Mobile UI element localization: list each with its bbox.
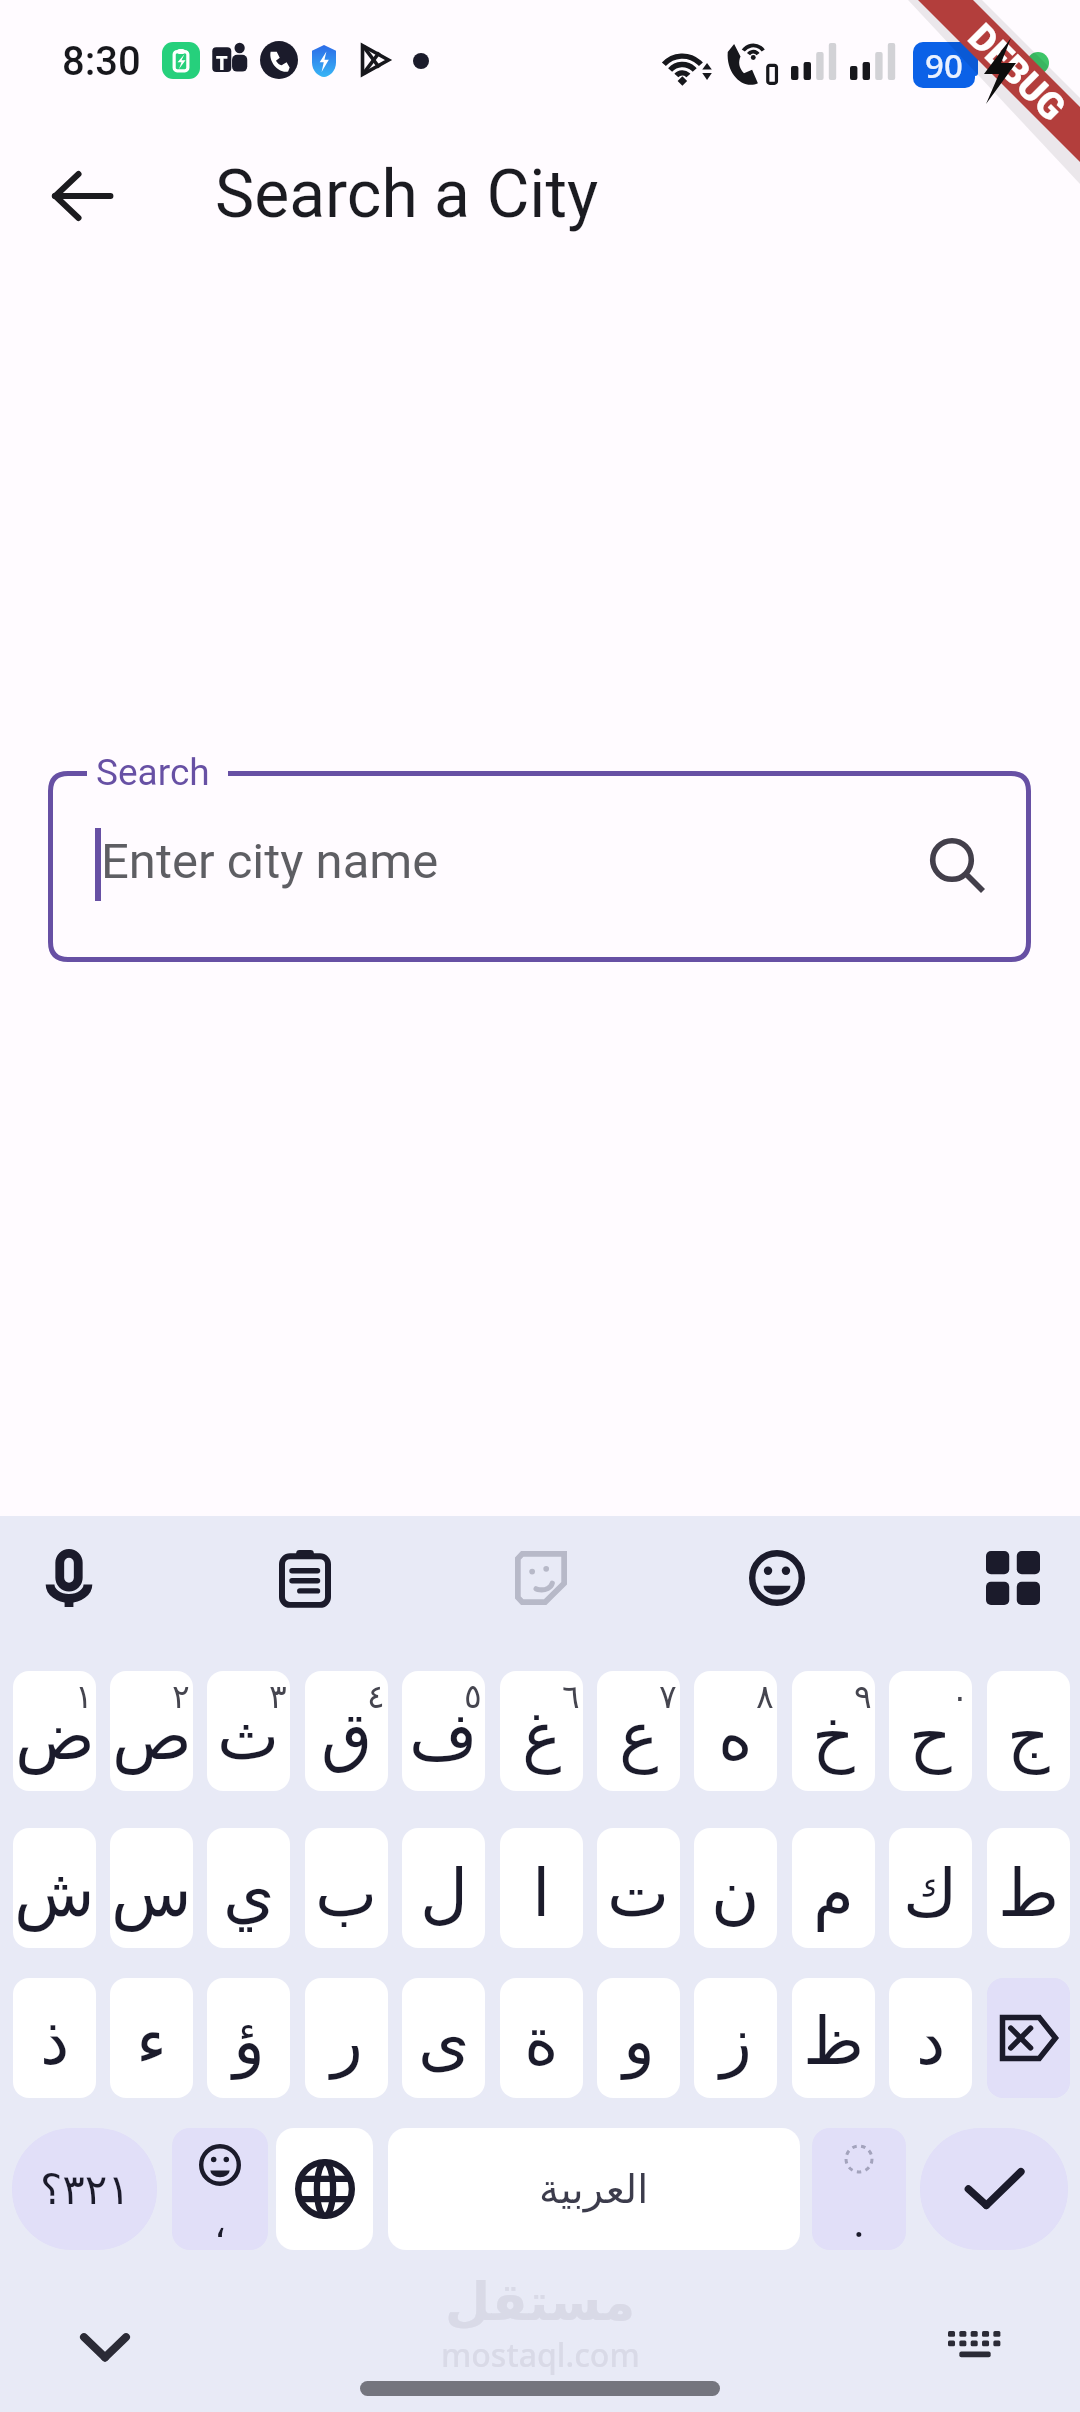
button[interactable]: More options (966, 1531, 1060, 1625)
staticText: ز (720, 2003, 752, 2080)
button[interactable]: Enter (920, 2128, 1068, 2250)
button[interactable]: ؤ (207, 1978, 290, 2098)
button[interactable]: ل (402, 1828, 485, 1948)
button[interactable]: ع (597, 1671, 680, 1791)
staticText: ن (711, 1855, 760, 1932)
button[interactable]: Stickers (494, 1531, 588, 1625)
button[interactable]: ب (305, 1828, 388, 1948)
button[interactable]: ك (889, 1828, 972, 1948)
staticText: ب (315, 1855, 378, 1932)
button[interactable]: Emoji (172, 2128, 268, 2250)
button[interactable]: ف (402, 1671, 485, 1791)
staticText: و (623, 2003, 655, 2080)
staticText: ق (321, 1698, 373, 1775)
button[interactable]: ‎؟‎٣٢١ (12, 2128, 157, 2250)
button[interactable]: ر (305, 1978, 388, 2098)
staticText: ء (136, 2003, 168, 2080)
staticText: ي (223, 1855, 275, 1932)
staticText: غ (522, 1698, 562, 1775)
staticText: 90 (925, 43, 963, 88)
button[interactable]: ء (110, 1978, 193, 2098)
staticText: ٨ (756, 1677, 774, 1715)
staticText: ص (112, 1698, 192, 1775)
button[interactable]: ة (500, 1978, 583, 2098)
staticText: ج (1007, 1698, 1050, 1775)
button[interactable]: ذ (13, 1978, 96, 2098)
staticText: ٥ (464, 1677, 482, 1715)
staticText: ٩ (854, 1677, 872, 1715)
staticText: ك (903, 1855, 958, 1932)
staticText: خ (812, 1698, 855, 1775)
button[interactable]: ن (694, 1828, 777, 1948)
button[interactable]: . (812, 2128, 906, 2250)
staticText: ٠ (951, 1677, 969, 1715)
button[interactable]: ت (597, 1828, 680, 1948)
button[interactable]: غ (500, 1671, 583, 1791)
staticText: mostaql.com (441, 2333, 640, 2376)
button[interactable]: ز (694, 1978, 777, 2098)
button[interactable]: ش (13, 1828, 96, 1948)
staticText: العربية (539, 2166, 649, 2213)
button[interactable]: ض (13, 1671, 96, 1791)
button[interactable]: Voice input (22, 1531, 116, 1625)
staticText: ٤ (367, 1677, 385, 1715)
button[interactable]: ج (987, 1671, 1070, 1791)
button[interactable]: ي (207, 1828, 290, 1948)
button[interactable]: ه (694, 1671, 777, 1791)
button[interactable]: Back (34, 148, 130, 244)
staticText: ٦ (562, 1677, 580, 1715)
staticText: ض (15, 1698, 95, 1775)
staticText: س (111, 1855, 192, 1932)
staticText: ٢ (172, 1677, 190, 1715)
staticText: ‎؟‎٣٢١ (40, 2165, 130, 2214)
staticText: م (813, 1855, 854, 1932)
button[interactable]: Keyboard settings (928, 2300, 1022, 2394)
button[interactable]: ط (987, 1828, 1070, 1948)
staticText: ث (217, 1698, 280, 1775)
button[interactable]: ا (500, 1828, 583, 1948)
staticText: DEBUG (960, 15, 1074, 130)
staticText: ة (524, 2003, 559, 2080)
button[interactable]: Emoji (730, 1531, 824, 1625)
staticText: Enter city name (101, 833, 439, 890)
staticText: ه (718, 1698, 753, 1775)
button[interactable]: Change language (276, 2128, 373, 2250)
staticText: T (216, 49, 228, 76)
button[interactable]: ظ (792, 1978, 875, 2098)
staticText: Search a City (215, 156, 599, 233)
staticText: . (853, 2194, 866, 2248)
staticText: ا (532, 1855, 551, 1932)
button[interactable]: د (889, 1978, 972, 2098)
staticText: ٣ (269, 1677, 287, 1715)
button[interactable]: Backspace (987, 1978, 1070, 2098)
button[interactable]: Clipboard (258, 1531, 352, 1625)
staticText: Search (96, 751, 210, 794)
staticText: ظ (803, 2003, 865, 2080)
staticText: د (916, 2003, 946, 2080)
button[interactable]: ث (207, 1671, 290, 1791)
staticText: ى (418, 2003, 470, 2080)
button[interactable]: س (110, 1828, 193, 1948)
staticText: ط (998, 1855, 1060, 1932)
button[interactable]: Search (900, 810, 1004, 914)
staticText: ل (420, 1855, 468, 1932)
staticText: ذ (40, 2003, 70, 2080)
staticText: ح (909, 1698, 952, 1775)
staticText: ف (409, 1698, 478, 1775)
button[interactable]: Hide keyboard (58, 2300, 152, 2394)
staticText: مستقل (445, 2272, 636, 2333)
button[interactable]: العربية (388, 2128, 800, 2250)
button[interactable]: و (597, 1978, 680, 2098)
button[interactable]: خ (792, 1671, 875, 1791)
button[interactable]: ى (402, 1978, 485, 2098)
button[interactable]: ص (110, 1671, 193, 1791)
button[interactable]: ح (889, 1671, 972, 1791)
staticText: ٧ (659, 1677, 677, 1715)
button[interactable]: ق (305, 1671, 388, 1791)
staticText: ع (619, 1698, 659, 1775)
staticText: ر (331, 2003, 363, 2080)
staticText: ، (214, 2202, 227, 2246)
staticText: 8:30 (62, 38, 141, 85)
button[interactable]: م (792, 1828, 875, 1948)
staticText: ١ (75, 1677, 93, 1715)
